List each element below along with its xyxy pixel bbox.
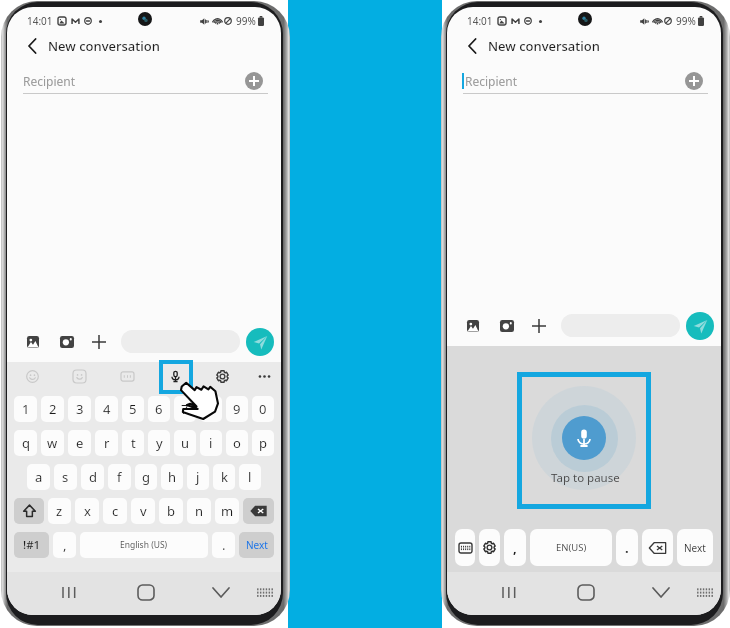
button[interactable]: Send xyxy=(686,312,714,340)
button[interactable]: Next xyxy=(677,529,713,566)
button[interactable]: r xyxy=(95,430,118,456)
button[interactable]: Back xyxy=(21,35,43,57)
button[interactable]: Add recipient xyxy=(245,72,263,90)
staticText: 1 xyxy=(22,400,30,418)
button[interactable]: , xyxy=(504,529,526,566)
button[interactable]: . xyxy=(616,529,638,566)
button[interactable]: u xyxy=(174,430,196,456)
button[interactable]: 9 xyxy=(226,396,248,422)
button[interactable]: 4 xyxy=(95,396,118,422)
button[interactable]: Keyboard xyxy=(455,529,475,566)
staticText: b xyxy=(167,502,175,520)
button[interactable]: 7 xyxy=(174,396,196,422)
button[interactable]: Settings xyxy=(479,529,500,566)
button[interactable]: t xyxy=(122,430,144,456)
staticText: 9 xyxy=(233,400,241,418)
button[interactable]: Space xyxy=(80,532,208,558)
button[interactable]: Voice input xyxy=(163,362,187,390)
button[interactable]: , xyxy=(53,532,76,558)
button[interactable]: Settings xyxy=(210,362,234,390)
button[interactable]: Home xyxy=(134,579,158,605)
button[interactable]: 3 xyxy=(68,396,91,422)
staticText: d xyxy=(89,468,97,486)
button[interactable]: d xyxy=(81,464,104,490)
button[interactable]: Recents xyxy=(497,579,521,605)
button[interactable]: Tap to pause xyxy=(562,416,606,460)
button[interactable]: i xyxy=(200,430,222,456)
button[interactable]: GIF xyxy=(115,362,139,390)
staticText: English (US) xyxy=(120,539,168,551)
staticText: o xyxy=(233,434,241,452)
button[interactable]: Stickers xyxy=(67,362,91,390)
button[interactable]: Change keyboard xyxy=(693,579,717,605)
staticText: w xyxy=(47,434,58,452)
button[interactable]: Space xyxy=(530,529,612,566)
button[interactable]: m xyxy=(215,498,239,524)
staticText: p xyxy=(259,434,267,452)
button[interactable]: x xyxy=(75,498,99,524)
button[interactable]: Shift xyxy=(14,498,44,524)
button[interactable]: p xyxy=(252,430,274,456)
button[interactable]: Emoji xyxy=(20,362,44,390)
staticText: e xyxy=(76,434,84,452)
button[interactable]: 6 xyxy=(148,396,170,422)
staticText: 4 xyxy=(103,400,111,418)
button[interactable]: b xyxy=(159,498,183,524)
staticText: 0 xyxy=(259,400,267,418)
button[interactable]: z xyxy=(48,498,71,524)
button[interactable]: 8 xyxy=(200,396,222,422)
button[interactable]: Gallery xyxy=(462,315,484,337)
button[interactable]: l xyxy=(239,464,261,490)
button[interactable]: . xyxy=(212,532,235,558)
button[interactable]: 1 xyxy=(14,396,37,422)
staticText: 14:01 xyxy=(27,14,53,28)
button[interactable]: s xyxy=(54,464,77,490)
button[interactable]: g xyxy=(135,464,157,490)
button[interactable]: Hide keyboard xyxy=(209,579,233,605)
button[interactable]: More xyxy=(252,362,276,390)
button[interactable]: Change keyboard xyxy=(253,579,277,605)
button[interactable]: q xyxy=(14,430,37,456)
button[interactable]: 0 xyxy=(252,396,274,422)
staticText: y xyxy=(156,434,163,452)
button[interactable]: Symbols xyxy=(14,532,49,558)
staticText: c xyxy=(112,502,119,520)
button[interactable]: e xyxy=(68,430,91,456)
button[interactable]: Home xyxy=(574,579,598,605)
button[interactable]: n xyxy=(187,498,211,524)
button[interactable]: Gallery xyxy=(22,331,44,353)
button[interactable]: y xyxy=(148,430,170,456)
button[interactable]: Add attachment xyxy=(88,331,110,353)
staticText: i xyxy=(209,434,213,452)
button[interactable]: c xyxy=(103,498,127,524)
button[interactable]: o xyxy=(226,430,248,456)
button[interactable]: Camera xyxy=(56,331,78,353)
button[interactable]: Add attachment xyxy=(528,315,550,337)
button[interactable]: 5 xyxy=(122,396,144,422)
staticText: Tap to pause xyxy=(551,470,620,486)
staticText: 8 xyxy=(207,400,215,418)
staticText: s xyxy=(62,468,69,486)
button[interactable]: Backspace xyxy=(243,498,274,524)
button[interactable]: h xyxy=(161,464,183,490)
staticText: EN(US) xyxy=(556,541,587,554)
button[interactable]: Send xyxy=(246,328,274,356)
button[interactable]: 2 xyxy=(41,396,64,422)
button[interactable]: w xyxy=(41,430,64,456)
button[interactable]: Add recipient xyxy=(685,72,703,90)
button[interactable]: k xyxy=(213,464,235,490)
button[interactable]: Next xyxy=(239,532,274,558)
staticText: Next xyxy=(246,538,268,552)
button[interactable]: Camera xyxy=(496,315,518,337)
button[interactable]: a xyxy=(27,464,50,490)
button[interactable]: v xyxy=(131,498,155,524)
button[interactable]: f xyxy=(108,464,131,490)
button[interactable]: j xyxy=(187,464,209,490)
button[interactable]: Hide keyboard xyxy=(649,579,673,605)
button[interactable]: Backspace xyxy=(642,529,673,566)
staticText: q xyxy=(22,434,30,452)
button[interactable]: Back xyxy=(461,35,483,57)
button[interactable]: Recents xyxy=(57,579,81,605)
